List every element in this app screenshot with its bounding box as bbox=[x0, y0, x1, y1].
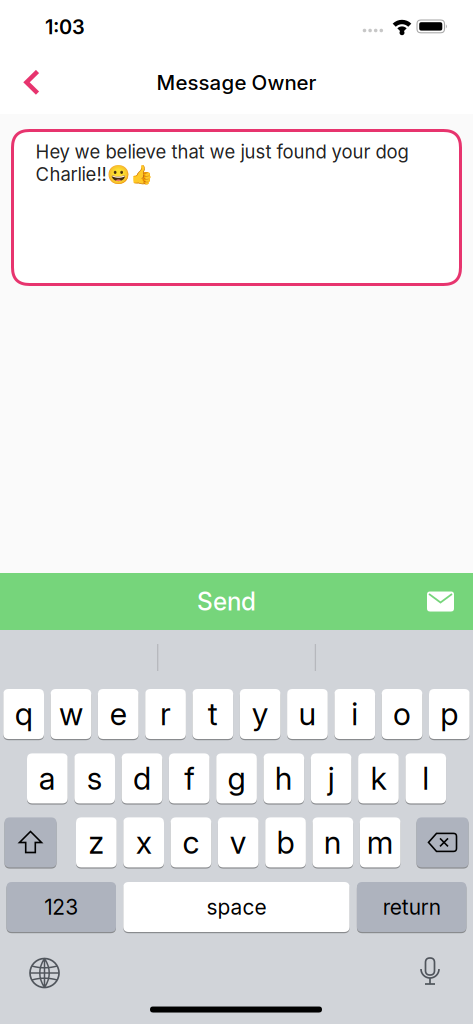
staticText: w bbox=[59, 695, 83, 733]
button[interactable]: z bbox=[76, 817, 117, 869]
button[interactable]: u bbox=[287, 689, 328, 740]
staticText: b bbox=[277, 824, 295, 861]
button[interactable]: Send bbox=[0, 573, 473, 630]
button[interactable]: m bbox=[360, 817, 400, 869]
staticText: Hey we believe that we just found your d… bbox=[35, 141, 408, 185]
staticText: Send bbox=[197, 587, 256, 616]
staticText: return bbox=[383, 894, 441, 920]
button[interactable]: return bbox=[357, 882, 466, 933]
button[interactable]: s bbox=[74, 753, 115, 805]
button[interactable]: Dictate bbox=[408, 951, 452, 995]
staticText: space bbox=[206, 894, 266, 920]
staticText: g bbox=[227, 760, 245, 797]
staticText: a bbox=[39, 760, 56, 797]
button[interactable]: Next keyboard bbox=[22, 951, 66, 995]
staticText: q bbox=[15, 695, 33, 733]
staticText: 1:03 bbox=[45, 15, 85, 39]
staticText: k bbox=[370, 760, 386, 797]
staticText: 123 bbox=[44, 894, 78, 920]
staticText: d bbox=[133, 760, 151, 797]
button[interactable]: Back bbox=[9, 60, 53, 104]
button[interactable]: i bbox=[334, 689, 375, 740]
button[interactable]: c bbox=[171, 817, 211, 869]
button[interactable]: h bbox=[263, 753, 304, 805]
button[interactable]: k bbox=[358, 753, 399, 805]
staticText: o bbox=[393, 695, 411, 733]
staticText: j bbox=[328, 760, 335, 797]
staticText: Message Owner bbox=[156, 70, 316, 95]
button[interactable]: r bbox=[145, 689, 186, 740]
button[interactable]: w bbox=[51, 689, 91, 740]
staticText: u bbox=[298, 695, 316, 733]
staticText: v bbox=[230, 824, 247, 861]
staticText: t bbox=[208, 695, 218, 733]
button[interactable]: Delete bbox=[416, 817, 468, 869]
button[interactable]: q bbox=[3, 689, 44, 740]
button[interactable]: g bbox=[216, 753, 257, 805]
staticText: c bbox=[182, 824, 199, 861]
button[interactable]: b bbox=[265, 817, 306, 869]
button[interactable]: j bbox=[311, 753, 351, 805]
button[interactable]: n bbox=[312, 817, 353, 869]
button[interactable]: 123 bbox=[6, 882, 116, 933]
staticText: l bbox=[422, 760, 429, 797]
staticText: f bbox=[184, 760, 194, 797]
button[interactable]: f bbox=[169, 753, 210, 805]
button[interactable]: l bbox=[405, 753, 446, 805]
staticText: e bbox=[110, 695, 127, 733]
staticText: i bbox=[351, 695, 358, 733]
button[interactable]: e bbox=[98, 689, 139, 740]
staticText: z bbox=[88, 824, 104, 861]
button[interactable]: t bbox=[192, 689, 233, 740]
button[interactable]: y bbox=[240, 689, 280, 740]
staticText: n bbox=[324, 824, 342, 861]
button[interactable]: Shift bbox=[4, 817, 56, 869]
staticText: r bbox=[160, 695, 171, 733]
button[interactable]: d bbox=[122, 753, 162, 805]
button[interactable]: x bbox=[123, 817, 164, 869]
staticText: p bbox=[440, 695, 458, 733]
staticText: h bbox=[275, 760, 293, 797]
button[interactable]: v bbox=[218, 817, 259, 869]
staticText: m bbox=[367, 824, 394, 861]
button[interactable]: o bbox=[382, 689, 422, 740]
button[interactable]: a bbox=[27, 753, 68, 805]
staticText: s bbox=[87, 760, 103, 797]
button[interactable]: space bbox=[123, 882, 350, 933]
staticText: x bbox=[136, 824, 152, 861]
staticText: y bbox=[252, 695, 269, 733]
button[interactable]: p bbox=[429, 689, 470, 740]
